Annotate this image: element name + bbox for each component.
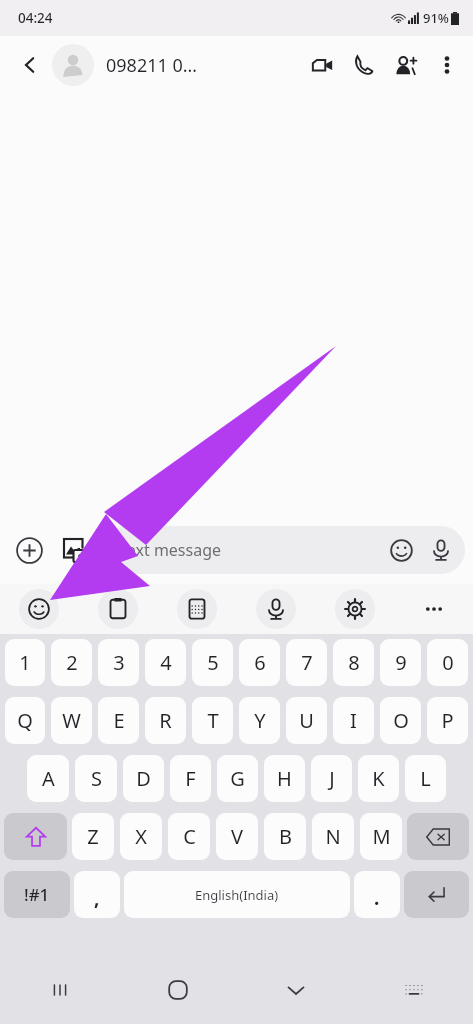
button[interactable]: More options [427, 45, 467, 85]
button[interactable]: Clipboard [78, 589, 157, 629]
staticText: J [329, 765, 335, 792]
button[interactable]: G [217, 755, 258, 802]
button[interactable]: 3 [98, 639, 139, 686]
staticText: Q [17, 707, 33, 734]
button[interactable]: , [74, 871, 120, 918]
button[interactable]: Back [8, 43, 52, 87]
button[interactable]: Home [119, 956, 237, 1024]
staticText: S [91, 765, 102, 792]
staticText: 91% [423, 9, 449, 27]
staticText: R [159, 707, 172, 734]
button[interactable]: 5 [192, 639, 233, 686]
button[interactable]: N [312, 813, 354, 860]
button[interactable]: Keyboard settings [315, 589, 394, 629]
button[interactable]: A [27, 755, 69, 802]
staticText: V [231, 823, 243, 850]
button[interactable]: Voice typing [236, 589, 315, 629]
button[interactable]: L [405, 755, 446, 802]
button[interactable]: English(India) [124, 871, 350, 918]
button[interactable]: U [286, 697, 327, 744]
button[interactable]: C [168, 813, 210, 860]
button[interactable]: Contact avatar [52, 44, 94, 86]
button[interactable]: Add attachment [6, 527, 52, 573]
button[interactable]: Q [5, 697, 45, 744]
button[interactable]: Enter [404, 871, 469, 918]
button[interactable]: Emoji [0, 589, 78, 629]
staticText: O [393, 707, 409, 734]
button[interactable]: Hide keyboard [237, 956, 355, 1024]
button[interactable]: 2 [51, 639, 92, 686]
button[interactable]: Text message [102, 526, 465, 574]
button[interactable]: 9 [380, 639, 421, 686]
button[interactable]: H [264, 755, 305, 802]
button[interactable]: Video call [301, 44, 343, 86]
button[interactable]: Recents [0, 956, 119, 1024]
staticText: Z [87, 823, 99, 850]
button[interactable]: Add participant [385, 44, 427, 86]
button[interactable]: M [360, 813, 402, 860]
button[interactable]: R [145, 697, 186, 744]
staticText: T [207, 707, 219, 734]
button[interactable]: Switch keyboard [355, 956, 473, 1024]
button[interactable]: S [75, 755, 117, 802]
button[interactable]: 4 [145, 639, 186, 686]
staticText: A [42, 765, 55, 792]
button[interactable]: I [333, 697, 374, 744]
staticText: D [136, 765, 151, 792]
button[interactable]: B [264, 813, 306, 860]
button[interactable]: Gallery [52, 527, 98, 573]
staticText: 6 [254, 649, 266, 676]
staticText: P [441, 707, 454, 734]
button[interactable]: W [51, 697, 92, 744]
staticText: 5 [207, 649, 219, 676]
button[interactable]: More [394, 589, 473, 629]
button[interactable]: 8 [333, 639, 374, 686]
button[interactable]: T [192, 697, 233, 744]
button[interactable]: F [170, 755, 211, 802]
staticText: 4 [160, 649, 172, 676]
button[interactable]: 1 [5, 639, 45, 686]
staticText: M [372, 823, 391, 850]
button[interactable]: Y [239, 697, 280, 744]
staticText: 7 [301, 649, 313, 676]
staticText: H [277, 765, 292, 792]
button[interactable]: Emoji [381, 530, 421, 570]
staticText: 0 [442, 649, 454, 676]
button[interactable]: 7 [286, 639, 327, 686]
button[interactable]: Voice call [343, 44, 385, 86]
button[interactable]: O [380, 697, 421, 744]
button[interactable]: Backspace [407, 813, 469, 860]
staticText: C [183, 823, 196, 850]
staticText: , [94, 885, 100, 911]
staticText: K [372, 765, 385, 792]
staticText: 9 [395, 649, 407, 676]
button[interactable]: . [354, 871, 400, 918]
button[interactable]: V [216, 813, 258, 860]
button[interactable]: 098211 0… [106, 53, 301, 78]
staticText: N [325, 823, 341, 850]
staticText: B [279, 823, 292, 850]
staticText: 2 [66, 649, 78, 676]
button[interactable]: Shift [4, 813, 67, 860]
staticText: 8 [348, 649, 360, 676]
button[interactable]: D [123, 755, 164, 802]
button[interactable]: !#1 [4, 871, 70, 918]
button[interactable]: E [98, 697, 139, 744]
button[interactable]: 6 [239, 639, 280, 686]
button[interactable]: 0 [427, 639, 468, 686]
staticText: Y [254, 707, 266, 734]
staticText: X [135, 823, 147, 850]
staticText: English(India) [195, 886, 279, 904]
button[interactable]: X [120, 813, 162, 860]
button[interactable]: K [358, 755, 399, 802]
staticText: !#1 [24, 883, 50, 906]
button[interactable]: Z [72, 813, 114, 860]
staticText: L [420, 765, 431, 792]
button[interactable]: J [311, 755, 352, 802]
staticText: 3 [113, 649, 125, 676]
button[interactable]: P [427, 697, 468, 744]
button[interactable]: Voice input [421, 530, 461, 570]
button[interactable]: Keyboard modes [157, 589, 236, 629]
staticText: E [113, 707, 125, 734]
staticText: F [185, 765, 196, 792]
